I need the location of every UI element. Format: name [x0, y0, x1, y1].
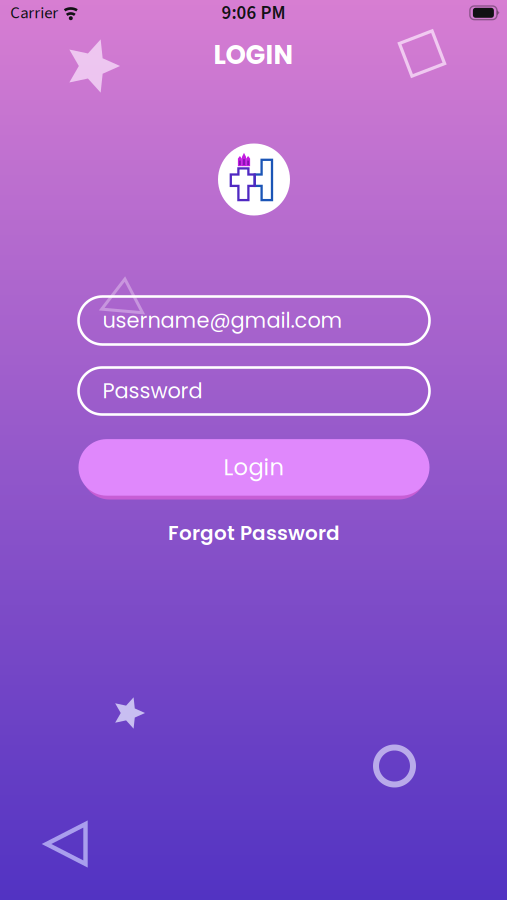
staticText: Password: [102, 376, 202, 406]
staticText: LOGIN: [213, 37, 293, 73]
button[interactable]: Login: [78, 439, 429, 496]
staticText: 9:06 PM: [221, 0, 285, 26]
staticText: Carrier: [10, 1, 58, 25]
button[interactable]: Forgot Password: [158, 515, 350, 551]
staticText: Forgot Password: [168, 519, 340, 547]
staticText: username@gmail.com: [102, 306, 342, 335]
staticText: Login: [223, 451, 284, 483]
